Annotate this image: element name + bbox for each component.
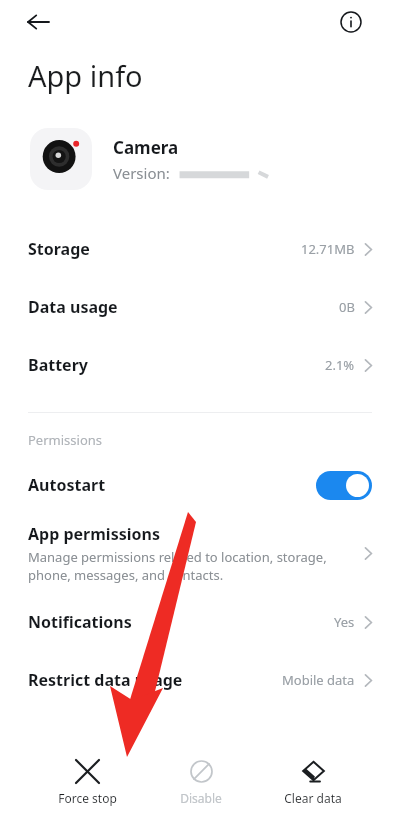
button[interactable]: Data usage xyxy=(0,278,400,336)
button[interactable]: Battery xyxy=(0,336,400,394)
staticText: 12.71MB xyxy=(301,240,355,258)
staticText: Autostart xyxy=(28,474,316,496)
staticText: Force stop xyxy=(58,790,117,806)
staticText: Version: xyxy=(113,163,170,183)
staticText: 0B xyxy=(339,298,355,316)
staticText: Camera xyxy=(113,136,179,159)
staticText: App info xyxy=(28,56,143,95)
button[interactable]: Notifications xyxy=(0,593,400,651)
button[interactable]: Autostart xyxy=(0,463,400,507)
button[interactable]: App permissions xyxy=(0,517,400,589)
staticText: Storage xyxy=(28,238,90,260)
button[interactable]: Force stop xyxy=(58,754,117,812)
button[interactable]: Restrict data usage xyxy=(0,651,400,709)
staticText: Disable xyxy=(180,790,222,806)
staticText: Permissions xyxy=(28,431,103,449)
staticText: Notifications xyxy=(28,611,132,633)
staticText: Manage permissions related to location, … xyxy=(28,548,327,584)
staticText: Data usage xyxy=(28,296,118,318)
staticText: Restrict data usage xyxy=(28,669,183,691)
staticText: 2.1% xyxy=(325,356,355,374)
staticText: Battery xyxy=(28,354,88,376)
button[interactable]: Disable xyxy=(180,754,222,812)
button[interactable]: Clear data xyxy=(284,754,342,812)
staticText: Mobile data xyxy=(282,671,355,689)
button[interactable]: Back xyxy=(18,2,58,42)
staticText: Clear data xyxy=(284,790,342,806)
staticText: Yes xyxy=(334,613,355,631)
staticText: App permissions xyxy=(28,523,160,545)
button[interactable]: Storage xyxy=(0,220,400,278)
button[interactable]: App details xyxy=(334,5,368,39)
